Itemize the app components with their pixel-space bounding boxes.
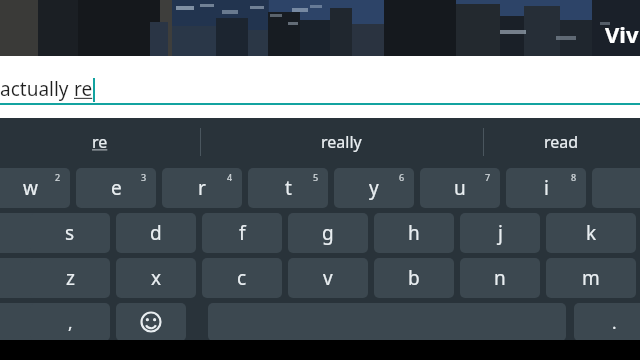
- staticText: h: [408, 220, 420, 246]
- button[interactable]: w: [0, 168, 70, 208]
- button[interactable]: s: [30, 213, 110, 253]
- staticText: r: [198, 175, 206, 201]
- staticText: re: [74, 76, 93, 102]
- staticText: s: [65, 220, 75, 246]
- button[interactable]: j: [460, 213, 540, 253]
- staticText: t: [285, 175, 292, 201]
- staticText: Viv: [605, 19, 639, 49]
- staticText: 4: [227, 171, 233, 183]
- button[interactable]: z: [30, 258, 110, 298]
- button[interactable]: x: [116, 258, 196, 298]
- staticText: 3: [141, 171, 147, 183]
- staticText: read: [544, 131, 579, 153]
- staticText: n: [494, 265, 506, 291]
- button[interactable]: e: [76, 168, 156, 208]
- button[interactable]: k: [546, 213, 636, 253]
- button[interactable]: [208, 303, 566, 341]
- staticText: actually: [0, 76, 74, 102]
- staticText: 5: [313, 171, 319, 183]
- staticText: d: [150, 220, 162, 246]
- staticText: y: [369, 175, 379, 201]
- button[interactable]: t: [248, 168, 328, 208]
- staticText: k: [586, 220, 597, 246]
- button[interactable]: re: [0, 120, 200, 164]
- button[interactable]: d: [116, 213, 196, 253]
- staticText: g: [322, 220, 334, 246]
- button[interactable]: f: [202, 213, 282, 253]
- button[interactable]: n: [460, 258, 540, 298]
- staticText: e: [111, 175, 122, 201]
- staticText: 7: [485, 171, 491, 183]
- staticText: u: [454, 175, 466, 201]
- button[interactable]: [0, 303, 42, 341]
- staticText: really: [321, 131, 362, 153]
- other: Emoji: [140, 311, 162, 333]
- staticText: ,: [68, 311, 73, 334]
- button[interactable]: read: [483, 120, 640, 164]
- button[interactable]: ,: [30, 303, 110, 341]
- staticText: z: [66, 265, 75, 291]
- staticText: 6: [399, 171, 405, 183]
- staticText: 8: [571, 171, 577, 183]
- staticText: v: [323, 265, 333, 291]
- button[interactable]: really: [200, 120, 483, 164]
- button[interactable]: c: [202, 258, 282, 298]
- staticText: c: [237, 265, 247, 291]
- staticText: re: [92, 131, 108, 153]
- staticText: i: [544, 175, 549, 201]
- button[interactable]: v: [288, 258, 368, 298]
- button[interactable]: y: [334, 168, 414, 208]
- button[interactable]: actually: [0, 56, 640, 118]
- button[interactable]: g: [288, 213, 368, 253]
- button[interactable]: r: [162, 168, 242, 208]
- button[interactable]: u: [420, 168, 500, 208]
- button[interactable]: Emoji: [116, 303, 186, 341]
- staticText: m: [582, 265, 600, 291]
- button[interactable]: .: [574, 303, 640, 341]
- staticText: b: [408, 265, 420, 291]
- staticText: w: [23, 175, 38, 201]
- button[interactable]: m: [546, 258, 636, 298]
- staticText: .: [612, 311, 617, 334]
- staticText: f: [239, 220, 246, 246]
- staticText: 2: [55, 171, 61, 183]
- button[interactable]: b: [374, 258, 454, 298]
- staticText: x: [151, 265, 162, 291]
- button[interactable]: i: [506, 168, 586, 208]
- staticText: j: [498, 220, 503, 246]
- button[interactable]: h: [374, 213, 454, 253]
